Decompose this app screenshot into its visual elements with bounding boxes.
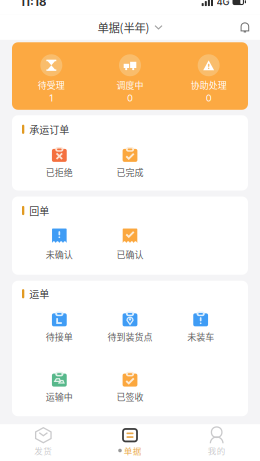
button[interactable]: 未装车	[165, 311, 236, 343]
button[interactable]: 运输中	[24, 371, 95, 403]
staticText: 已确认	[116, 248, 143, 261]
staticText: 已拒绝	[46, 165, 73, 178]
staticText: 运单	[29, 286, 49, 301]
staticText: 待受理	[38, 78, 65, 91]
staticText: 待接单	[46, 330, 73, 343]
staticText: 单据	[124, 444, 142, 457]
staticText: 待到装货点	[107, 330, 152, 343]
button[interactable]: 待到装货点	[95, 311, 165, 343]
staticText: 已完成	[116, 165, 143, 178]
staticText: 4G	[216, 0, 229, 7]
button[interactable]: 调度中	[91, 54, 169, 104]
button[interactable]: 发货	[0, 427, 87, 455]
button[interactable]: 待受理	[12, 54, 91, 104]
button[interactable]: 单据(半年)	[91, 16, 169, 38]
staticText: 已签收	[116, 390, 143, 403]
staticText: 调度中	[116, 78, 143, 91]
staticText: 11:18	[20, 0, 46, 9]
staticText: 单据(半年)	[97, 19, 149, 35]
staticText: 运输中	[46, 390, 73, 403]
button[interactable]: 已确认	[95, 228, 165, 261]
staticText: 1	[49, 92, 53, 104]
button[interactable]: 已完成	[95, 146, 165, 178]
staticText: 未确认	[46, 248, 73, 261]
button[interactable]: 已拒绝	[24, 146, 95, 178]
staticText: 协助处理	[191, 78, 227, 91]
staticText: 0	[206, 92, 212, 104]
staticText: 回单	[29, 203, 49, 218]
staticText: 未装车	[187, 330, 214, 343]
button[interactable]: 单据	[87, 427, 173, 455]
staticText: 发货	[34, 444, 52, 457]
button[interactable]: 待接单	[24, 311, 95, 343]
staticText: 0	[127, 92, 133, 104]
button[interactable]: 通知	[234, 16, 256, 38]
staticText: 承运订单	[29, 122, 69, 136]
button[interactable]: 协助处理	[169, 54, 248, 104]
button[interactable]: 未确认	[24, 228, 95, 261]
button[interactable]: 已签收	[95, 371, 165, 403]
button[interactable]: 我的	[173, 427, 260, 455]
staticText: 我的	[208, 444, 226, 457]
